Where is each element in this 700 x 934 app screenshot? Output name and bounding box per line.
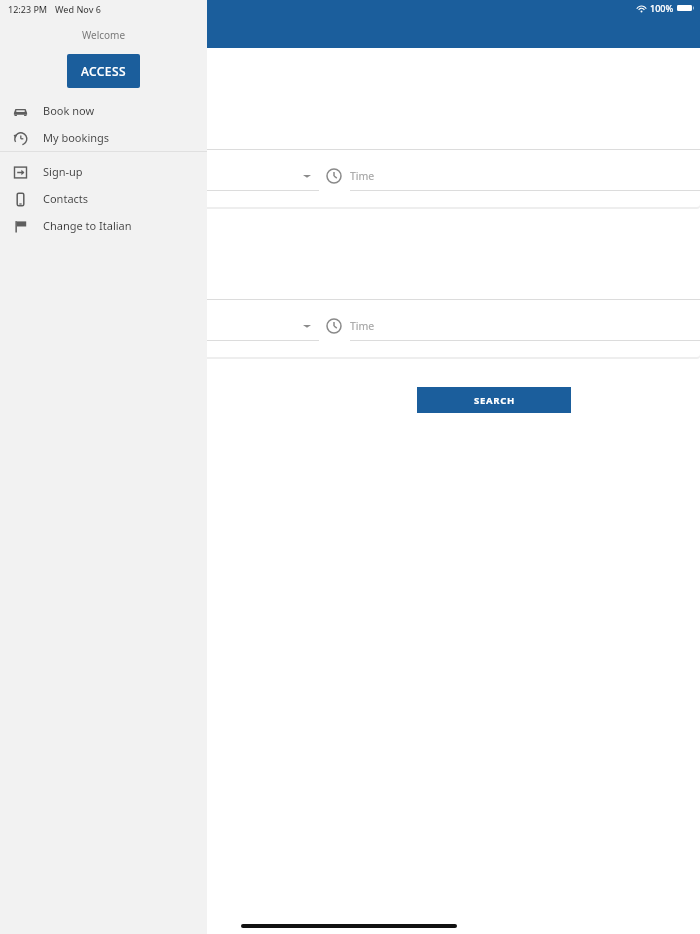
staticText: ACCESS bbox=[81, 63, 126, 79]
button[interactable]: Time bbox=[350, 161, 700, 191]
staticText: 12:23 PM bbox=[8, 3, 48, 15]
staticText: Contacts bbox=[43, 191, 89, 206]
staticText: Choose location bbox=[68, 128, 147, 142]
staticText: Change to Italian bbox=[43, 218, 132, 233]
button[interactable]: Contacts bbox=[0, 185, 207, 212]
button[interactable]: Book now bbox=[0, 97, 207, 124]
button[interactable]: Sign-up bbox=[0, 158, 207, 185]
staticText: 100% bbox=[650, 2, 674, 14]
button[interactable]: Date bbox=[67, 311, 319, 341]
button[interactable]: Choose location bbox=[30, 270, 700, 300]
button[interactable]: Open navigation drawer bbox=[8, 12, 42, 46]
staticText: My bookings bbox=[43, 130, 110, 145]
staticText: Welcome bbox=[0, 28, 207, 42]
staticText: Time bbox=[350, 169, 375, 183]
button[interactable]: Choose location bbox=[30, 120, 700, 150]
staticText: SEARCH bbox=[474, 394, 515, 407]
staticText: Noleggio e parcheggio a Napoli bbox=[50, 34, 184, 46]
staticText: Date bbox=[67, 169, 91, 183]
button[interactable]: Date bbox=[67, 161, 319, 191]
staticText: Time bbox=[350, 319, 375, 333]
staticText: Sign-up bbox=[43, 164, 83, 179]
button[interactable]: SEARCH bbox=[417, 387, 571, 413]
staticText: Book now bbox=[43, 103, 95, 118]
staticText: Wed Nov 6 bbox=[55, 3, 101, 15]
button[interactable]: My bookings bbox=[0, 124, 207, 151]
button[interactable]: Change to Italian bbox=[0, 212, 207, 239]
staticText: Rent Ora Group bbox=[50, 13, 163, 33]
button[interactable]: ACCESS bbox=[67, 54, 140, 88]
button[interactable]: Time bbox=[350, 311, 700, 341]
